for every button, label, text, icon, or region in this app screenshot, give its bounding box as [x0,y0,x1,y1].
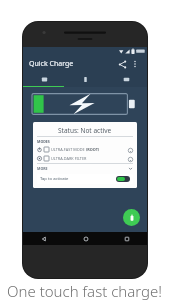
staticText: One touch fast charge! [7,281,162,301]
button[interactable]: Help [127,156,133,162]
staticText: Quick Charge [29,59,74,69]
button[interactable]: Home [65,232,106,245]
button[interactable]: MORE [37,164,133,172]
staticText: (ROOT) [86,147,100,152]
button[interactable]: Recents [106,232,147,245]
button[interactable]: Back [23,232,65,245]
button[interactable]: Share [115,57,129,71]
staticText: MORE [37,166,48,171]
staticText: MODES [37,139,50,144]
button[interactable]: Info tab [106,73,147,86]
staticText: ULTRA-FAST MODE [51,147,85,152]
button[interactable]: Activate fast charge [123,209,140,226]
button[interactable]: Tap to activate [37,174,133,184]
staticText: Tap to activate [40,176,69,182]
button[interactable]: More options [129,58,141,70]
button[interactable]: Charge tab [23,73,65,86]
button[interactable]: Battery tab [65,73,106,86]
button[interactable]: Help [127,147,133,153]
staticText: ULTRA-DARK FILTER [51,156,87,161]
button[interactable]: ULTRA-FAST MODE [37,145,133,154]
staticText: Status: Not active [58,126,112,135]
button[interactable]: ULTRA-DARK FILTER [37,154,133,163]
